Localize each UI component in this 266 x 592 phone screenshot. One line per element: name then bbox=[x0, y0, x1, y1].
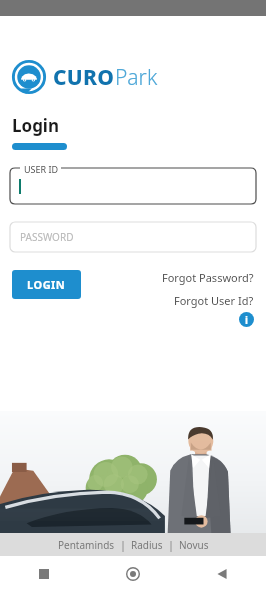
staticText: PASSWORD bbox=[20, 230, 74, 244]
staticText: Novus bbox=[179, 538, 209, 552]
button[interactable]: Back bbox=[177, 556, 266, 592]
staticText: Login bbox=[12, 114, 60, 137]
button[interactable]: Information bbox=[239, 312, 254, 327]
staticText: CURO bbox=[53, 63, 115, 92]
button[interactable]: PASSWORD bbox=[10, 222, 256, 252]
button[interactable]: USER ID bbox=[10, 168, 256, 204]
staticText: | bbox=[115, 538, 131, 552]
staticText: | bbox=[163, 538, 179, 552]
staticText: Forgot Password? bbox=[162, 270, 254, 285]
button[interactable]: Pentaminds bbox=[58, 538, 115, 552]
button[interactable]: Radius bbox=[131, 538, 163, 552]
button[interactable]: Novus bbox=[179, 538, 209, 552]
staticText: i bbox=[245, 313, 248, 327]
staticText: Forgot User Id? bbox=[174, 293, 254, 308]
staticText: Radius bbox=[131, 538, 163, 552]
button[interactable]: Recents bbox=[0, 556, 88, 592]
button[interactable]: Home bbox=[88, 556, 177, 592]
staticText: Pentaminds bbox=[58, 538, 115, 552]
staticText: LOGIN bbox=[27, 277, 66, 292]
button[interactable]: Forgot Password? bbox=[162, 270, 254, 285]
staticText: USER ID bbox=[24, 163, 59, 175]
button[interactable]: LOGIN bbox=[12, 270, 81, 299]
staticText: Park bbox=[115, 63, 158, 92]
button[interactable]: Forgot User Id? bbox=[174, 293, 254, 308]
